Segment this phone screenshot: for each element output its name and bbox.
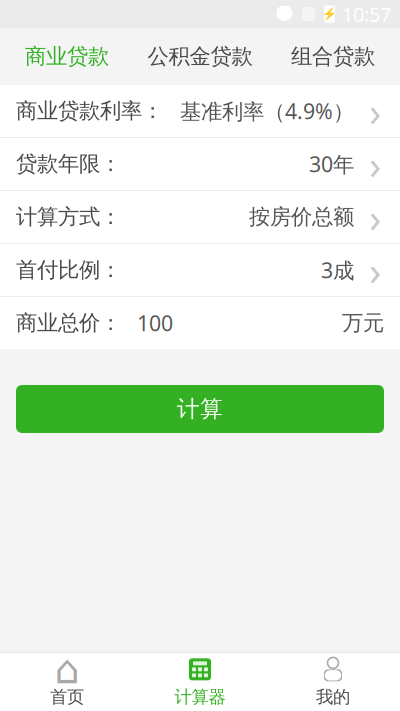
button[interactable]: 首付比例： — [0, 244, 400, 296]
staticText: 计算 — [177, 395, 223, 423]
staticText: ⌂ — [54, 647, 79, 692]
staticText: 商业总价： — [16, 310, 121, 336]
button[interactable]: 计算方式： — [0, 191, 400, 243]
staticText: › — [369, 84, 381, 137]
staticText: 30年 — [309, 150, 354, 178]
button[interactable]: 商业贷款利率： — [0, 85, 400, 137]
button[interactable]: 贷款年限： — [0, 138, 400, 190]
staticText: 首付比例： — [16, 257, 121, 283]
button[interactable]: 我的 — [266, 653, 399, 711]
button[interactable]: 商业贷款 — [0, 28, 133, 85]
staticText: 基准利率（4.9%） — [180, 97, 354, 125]
staticText: 100 — [137, 309, 173, 337]
staticText: 商业贷款利率： — [16, 98, 163, 124]
staticText: › — [369, 243, 381, 296]
staticText: 3成 — [321, 256, 354, 284]
staticText: 我的 — [316, 686, 350, 708]
staticText: 万元 — [342, 310, 384, 336]
staticText: 按房价总额 — [249, 204, 354, 230]
staticText: 10:57 — [342, 1, 391, 27]
staticText: 计算器 — [174, 686, 225, 708]
staticText: 组合贷款 — [291, 43, 375, 70]
staticText: 公积金贷款 — [147, 43, 252, 70]
button[interactable]: 公积金贷款 — [133, 28, 266, 85]
button[interactable]: 计算 — [16, 385, 384, 433]
staticText: 计算方式： — [16, 204, 121, 230]
staticText: › — [369, 190, 381, 243]
staticText: 商业贷款 — [25, 43, 109, 70]
staticText: 首页 — [50, 686, 84, 708]
staticText: ⚡ — [322, 7, 337, 21]
button[interactable]: 计算器 — [133, 653, 266, 711]
staticText: 贷款年限： — [16, 151, 121, 177]
button[interactable]: 组合贷款 — [266, 28, 399, 85]
staticText: › — [369, 137, 381, 190]
button[interactable]: ⌂ — [0, 653, 133, 711]
